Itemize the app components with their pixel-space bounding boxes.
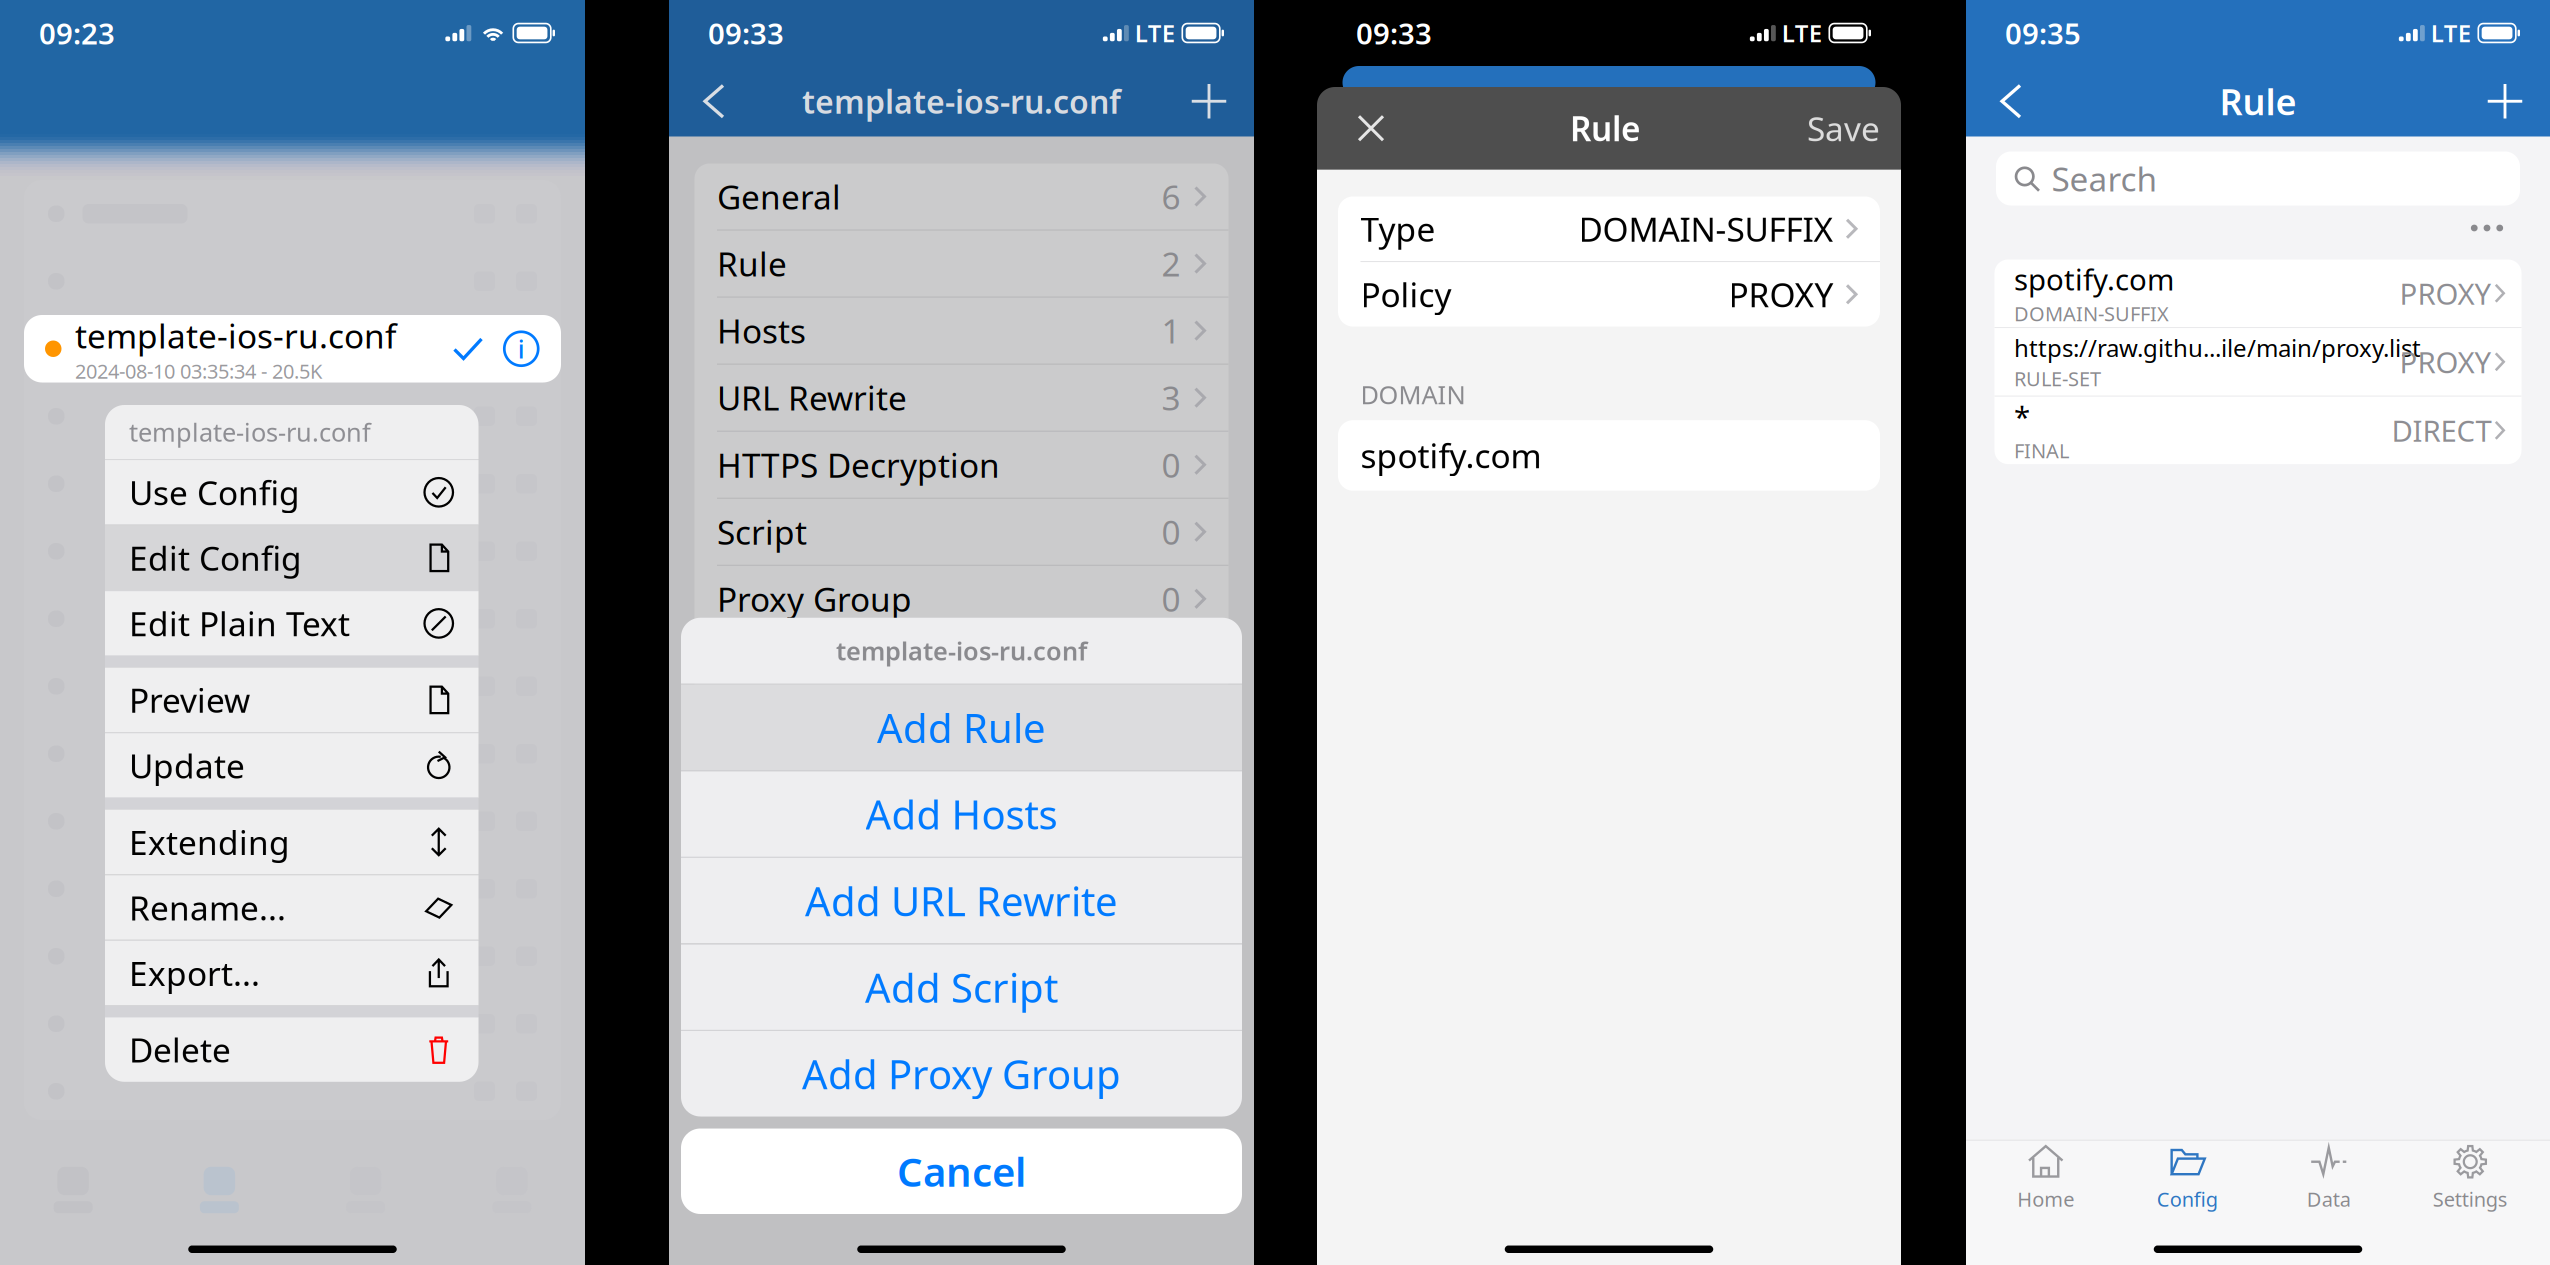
button[interactable]: Policy <box>1338 262 1880 327</box>
button[interactable]: Data <box>2258 1140 2399 1214</box>
button[interactable]: Edit Plain Text <box>105 591 478 656</box>
staticText: Type <box>1360 207 1435 251</box>
staticText: i <box>518 332 525 365</box>
button[interactable]: Edit Config <box>105 526 478 590</box>
staticText: 0 <box>1161 644 1180 688</box>
staticText: Rename... <box>129 885 286 930</box>
staticText: More <box>717 644 799 688</box>
button[interactable]: Script <box>694 499 1228 565</box>
staticText: Extending <box>129 820 290 864</box>
staticText: Proxy Group <box>717 577 912 621</box>
button[interactable]: Add Rule <box>681 685 1242 770</box>
staticText: 09:33 <box>708 13 784 52</box>
button[interactable]: Delete <box>105 1017 478 1082</box>
staticText: Add URL Rewrite <box>805 874 1118 927</box>
button[interactable]: Preview <box>105 668 478 732</box>
button[interactable]: Add Script <box>681 944 1242 1030</box>
button[interactable]: Save <box>1807 95 1880 161</box>
button[interactable]: https://raw.githu...ile/main/proxy.list <box>1994 328 2521 396</box>
staticText: Search <box>2051 156 2157 201</box>
staticText: 2024-08-10 03:35:34 - 20.5K <box>75 358 322 384</box>
staticText: 09:35 <box>2005 13 2081 52</box>
staticText: template-ios-ru.conf <box>802 80 1121 122</box>
button[interactable]: General <box>694 163 1228 229</box>
staticText: Config <box>2157 1186 2218 1212</box>
staticText: Add Script <box>865 961 1058 1014</box>
staticText: * <box>2014 397 2030 436</box>
button[interactable]: Add rule <box>2472 68 2538 134</box>
button[interactable]: Type <box>1338 196 1880 261</box>
staticText: Save <box>1807 106 1880 150</box>
staticText: Rule <box>1570 106 1641 150</box>
button[interactable]: Rule <box>694 231 1228 297</box>
staticText: 0 <box>1161 443 1180 487</box>
staticText: Add Proxy Group <box>802 1047 1121 1100</box>
staticText: Use Config <box>129 470 300 514</box>
staticText: PROXY <box>2399 274 2491 313</box>
staticText: Home <box>2017 1186 2074 1212</box>
staticText: RULE-SET <box>2014 365 2101 392</box>
button[interactable]: Search <box>1996 151 2520 205</box>
staticText: LTE <box>1782 17 1822 49</box>
staticText: 09:33 <box>1356 13 1432 52</box>
staticText: Add Hosts <box>865 787 1057 841</box>
button[interactable]: Close <box>1338 95 1404 161</box>
staticText: DIRECT <box>2391 411 2491 450</box>
staticText: Hosts <box>717 308 806 353</box>
button[interactable]: template-ios-ru.conf <box>24 315 561 382</box>
button[interactable]: Config <box>2116 1140 2258 1214</box>
button[interactable]: Update <box>105 733 478 798</box>
staticText: Edit Config <box>129 536 302 580</box>
staticText: template-ios-ru.conf <box>75 313 396 358</box>
staticText: Settings <box>2433 1186 2508 1212</box>
staticText: 1 <box>1161 308 1180 353</box>
button[interactable]: More <box>694 633 1228 699</box>
staticText: Rule <box>717 241 787 286</box>
staticText: Script <box>717 510 807 554</box>
button[interactable]: Use Config <box>105 460 478 525</box>
staticText: DOMAIN-SUFFIX <box>2014 300 2169 327</box>
button[interactable]: Add <box>1176 68 1242 134</box>
button[interactable]: Add Hosts <box>681 771 1242 857</box>
button[interactable]: Add URL Rewrite <box>681 858 1242 943</box>
button[interactable]: Extending <box>105 810 478 874</box>
staticText: Data <box>2307 1186 2351 1212</box>
staticText: DOMAIN <box>1360 378 1465 411</box>
button[interactable]: Export... <box>105 941 478 1005</box>
button[interactable]: Rename... <box>105 875 478 940</box>
button[interactable]: More options <box>2454 211 2520 244</box>
staticText: PROXY <box>2399 342 2491 381</box>
staticText: Update <box>129 743 245 788</box>
button[interactable]: Add Proxy Group <box>681 1031 1242 1116</box>
staticText: 09:23 <box>39 13 115 52</box>
staticText: HTTPS Decryption <box>717 443 1000 487</box>
button[interactable]: Settings <box>2399 1140 2541 1214</box>
staticText: LTE <box>2431 17 2471 49</box>
staticText: template-ios-ru.conf <box>129 415 371 449</box>
staticText: Edit Plain Text <box>129 601 350 646</box>
staticText: Add Rule <box>877 701 1046 754</box>
button[interactable]: HTTPS Decryption <box>694 432 1228 498</box>
staticText: FINAL <box>2014 437 2069 464</box>
button[interactable]: Cancel <box>681 1128 1242 1214</box>
staticText: spotify.com <box>2014 260 2174 299</box>
staticText: Preview <box>129 678 250 722</box>
button[interactable]: URL Rewrite <box>694 365 1228 431</box>
staticText: Delete <box>129 1027 231 1072</box>
button[interactable]: Proxy Group <box>694 566 1228 632</box>
staticText: 3 <box>1161 375 1180 420</box>
staticText: template-ios-ru.conf <box>836 634 1087 667</box>
button[interactable]: Home <box>1975 1140 2116 1214</box>
button[interactable]: Back <box>681 68 747 134</box>
staticText: 0 <box>1161 577 1180 621</box>
staticText: spotify.com <box>1360 433 1541 478</box>
staticText: Cancel <box>897 1145 1026 1198</box>
staticText: 0 <box>1161 510 1180 554</box>
staticText: PROXY <box>1728 272 1833 316</box>
button[interactable]: * <box>1994 397 2521 464</box>
staticText: General <box>717 174 841 219</box>
button[interactable]: Back <box>1978 68 2044 134</box>
button[interactable]: Hosts <box>694 298 1228 364</box>
button[interactable]: spotify.com <box>1994 259 2521 327</box>
staticText: 6 <box>1161 174 1180 219</box>
